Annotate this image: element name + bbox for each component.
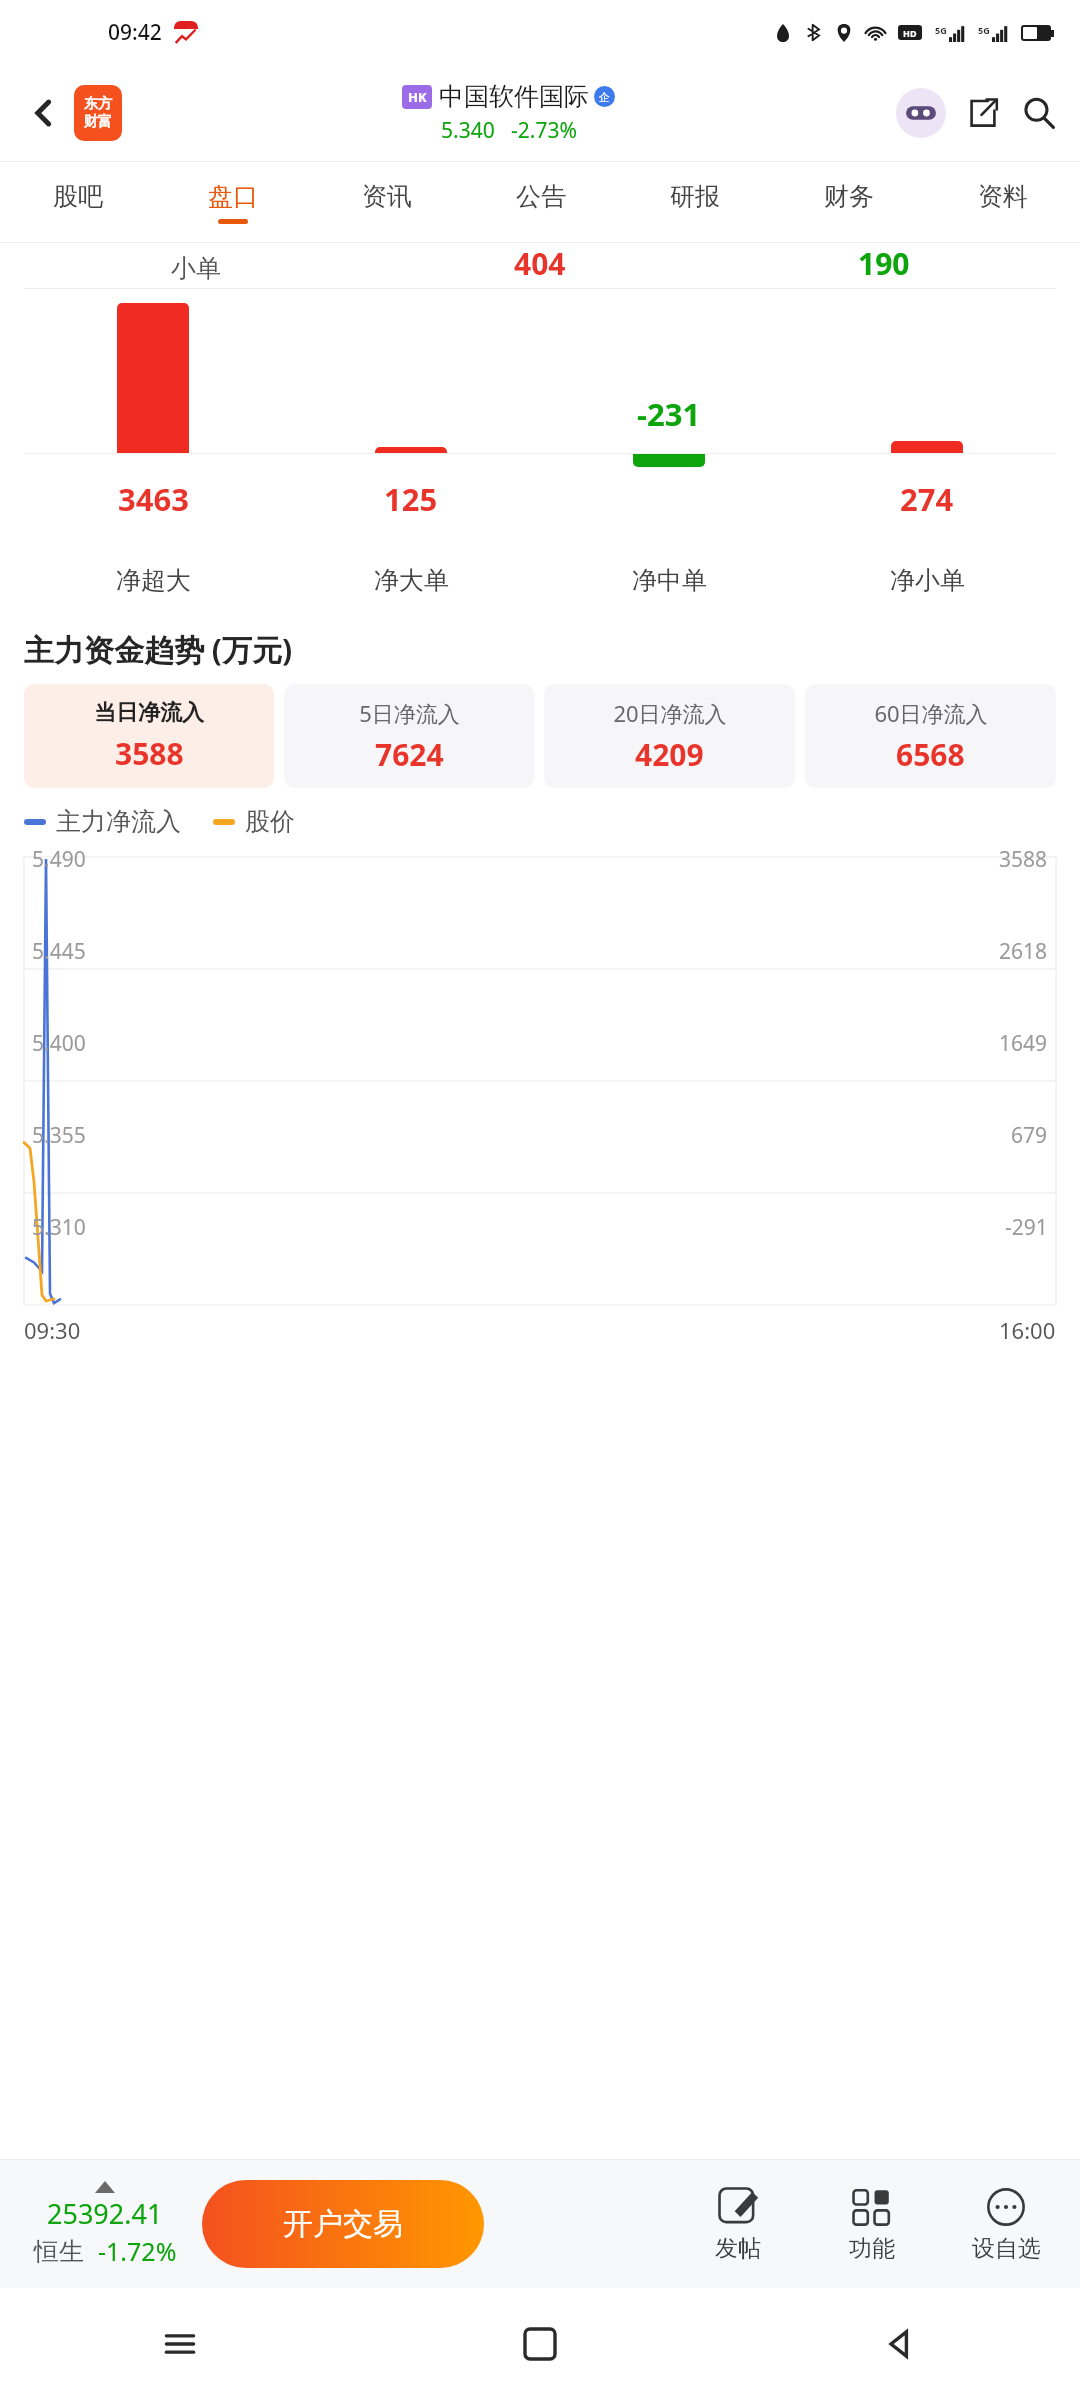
staticText: 679 [1011,1121,1048,1150]
staticText: 60日净流入 [874,698,988,728]
staticText: 6568 [896,734,965,775]
button[interactable]: 5日净流入 [284,684,534,788]
staticText: 东方 [84,95,112,113]
staticText: 财富 [84,113,112,131]
staticText: 资料 [978,181,1028,212]
button[interactable]: 财务 [772,162,926,242]
button[interactable]: 资料 [926,162,1080,242]
button[interactable]: 开户交易 [202,2180,484,2268]
staticText: 5.445 [32,937,86,966]
staticText: 股吧 [53,181,103,212]
button[interactable]: 发帖 [684,2186,792,2263]
staticText: 5G [935,24,947,36]
button[interactable]: Profile [896,88,946,138]
staticText: 404 [514,243,566,284]
staticText: -1.72% [98,2234,177,2268]
button[interactable]: 设自选 [952,2186,1060,2263]
staticText: 当日净流入 [94,699,204,727]
staticText: 3463 [118,478,189,520]
staticText: 2618 [999,937,1048,966]
button[interactable]: Recents [0,2288,360,2400]
staticText: 净超大 [116,565,191,596]
staticText: 主力资金趋势 (万元) [24,629,293,670]
button[interactable]: 股吧 [0,162,155,242]
staticText: 190 [858,243,910,284]
button[interactable]: Share [960,90,1006,136]
staticText: 净小单 [890,565,965,596]
button[interactable]: Back [720,2288,1080,2400]
staticText: -2.73% [511,116,577,145]
button[interactable]: 资讯 [310,162,464,242]
staticText: 3588 [115,733,184,774]
staticText: 净中单 [632,565,707,596]
button[interactable]: 公告 [464,162,618,242]
staticText: 09:42 [108,18,162,47]
staticText: 发帖 [715,2234,761,2263]
button[interactable]: 功能 [818,2186,926,2263]
staticText: 股价 [245,806,295,837]
staticText: 5日净流入 [359,698,460,728]
button[interactable]: 当日净流入 [24,684,274,788]
staticText: 5G [978,24,990,36]
staticText: 1649 [999,1029,1048,1058]
staticText: 公告 [516,181,566,212]
button[interactable]: 20日净流入 [544,684,795,788]
staticText: 财务 [824,181,874,212]
staticText: -231 [637,393,701,435]
button[interactable]: 盘口 [155,162,310,242]
staticText: 274 [900,478,954,520]
staticText: 7624 [375,734,444,775]
staticText: 4209 [635,734,704,775]
button[interactable]: Search [1016,90,1062,136]
staticText: 25392.41 [47,2195,163,2232]
staticText: 功能 [849,2234,895,2263]
staticText: 开户交易 [283,2205,403,2243]
staticText: 16:00 [999,1315,1056,1345]
button[interactable]: Home [360,2288,720,2400]
staticText: 恒生 [34,2236,84,2267]
staticText: 盘口 [208,181,258,212]
staticText: 5.490 [32,845,86,874]
staticText: 125 [384,478,438,520]
staticText: 净大单 [374,565,449,596]
staticText: -291 [1005,1213,1048,1242]
staticText: HD [903,27,917,39]
staticText: 主力净流入 [56,806,181,837]
button[interactable]: 25392.41 [20,2181,190,2268]
staticText: 3588 [999,845,1048,874]
staticText: 中国软件国际 [439,81,589,112]
staticText: 企 [599,90,610,104]
staticText: 设自选 [972,2234,1041,2263]
button[interactable]: East Money [74,85,122,141]
button[interactable]: 研报 [618,162,772,242]
button[interactable]: Back [18,87,70,139]
staticText: 5.340 [441,116,495,145]
staticText: 小单 [171,253,221,284]
staticText: 5.400 [32,1029,86,1058]
staticText: 20日净流入 [613,698,727,728]
button[interactable]: 60日净流入 [805,684,1056,788]
staticText: 09:30 [24,1315,81,1345]
staticText: 研报 [670,181,720,212]
staticText: 5.355 [32,1121,86,1150]
staticText: HK [408,88,427,106]
staticText: 资讯 [362,181,412,212]
staticText: 5.310 [32,1213,86,1242]
